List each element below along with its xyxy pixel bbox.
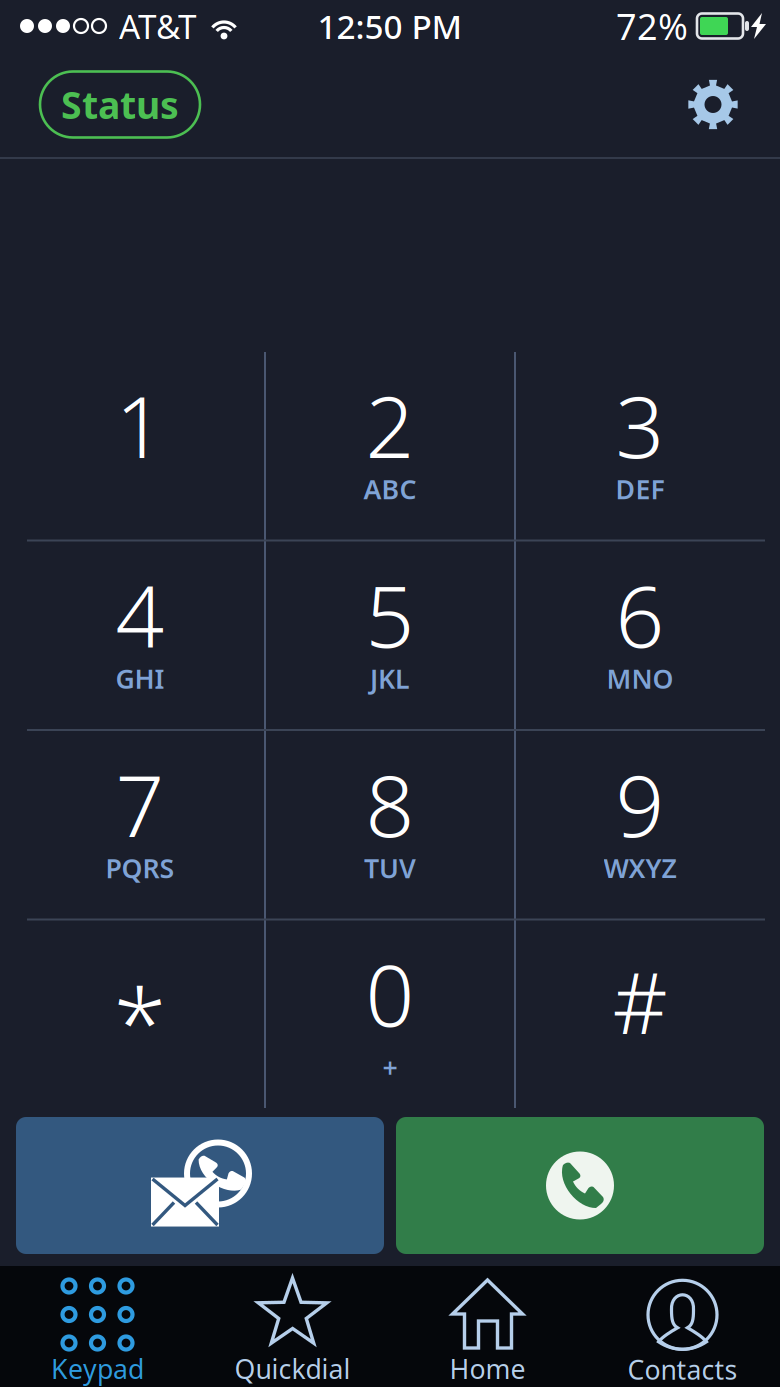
button[interactable]: 2 [265, 352, 515, 539]
button[interactable]: 3 [515, 352, 765, 539]
staticText: 4 [115, 558, 164, 671]
button[interactable]: 9 [515, 731, 765, 918]
staticText: ABC [363, 471, 416, 507]
button[interactable]: Home [390, 1266, 585, 1387]
button[interactable]: Voicemail [16, 1117, 384, 1254]
staticText: MNO [606, 661, 673, 696]
staticText: 3 [615, 368, 664, 482]
button[interactable]: 4 [15, 541, 265, 729]
button[interactable]: Contacts [585, 1266, 780, 1387]
staticText: Keypad [51, 1351, 144, 1386]
staticText: Status [61, 80, 179, 129]
staticText: DEF [615, 471, 664, 507]
staticText: TUV [364, 850, 416, 886]
staticText: PQRS [105, 850, 174, 886]
staticText: 72% [616, 2, 688, 50]
staticText: Contacts [627, 1352, 737, 1387]
staticText: AT&T [119, 4, 197, 48]
button[interactable]: 7 [15, 731, 265, 918]
button[interactable]: Keypad [0, 1266, 195, 1387]
staticText: 6 [615, 558, 664, 671]
staticText: # [612, 945, 667, 1058]
staticText: WXYZ [603, 850, 676, 886]
staticText: 12:50 PM [317, 4, 462, 48]
button[interactable]: Settings [688, 79, 738, 129]
button[interactable]: 0 [265, 920, 515, 1108]
button[interactable]: Call [396, 1117, 764, 1254]
staticText: + [382, 1050, 397, 1085]
staticText: JKL [370, 661, 410, 696]
staticText: Home [449, 1351, 525, 1386]
staticText: 9 [615, 747, 664, 861]
staticText: 8 [365, 747, 414, 861]
staticText: 1 [115, 368, 164, 482]
staticText: 7 [115, 747, 164, 861]
button[interactable]: # [515, 920, 765, 1108]
button[interactable]: 1 [15, 352, 265, 539]
button[interactable]: Status [40, 71, 200, 137]
staticText: 2 [365, 368, 414, 482]
button[interactable]: 8 [265, 731, 515, 918]
staticText: 5 [365, 558, 414, 671]
button[interactable]: 6 [515, 541, 765, 729]
button[interactable]: 5 [265, 541, 515, 729]
staticText: GHI [115, 661, 164, 696]
staticText: * [113, 958, 166, 1085]
button[interactable]: * [15, 920, 265, 1108]
button[interactable]: Quickdial [195, 1266, 390, 1387]
staticText: 0 [365, 937, 414, 1050]
staticText: Quickdial [234, 1351, 350, 1386]
